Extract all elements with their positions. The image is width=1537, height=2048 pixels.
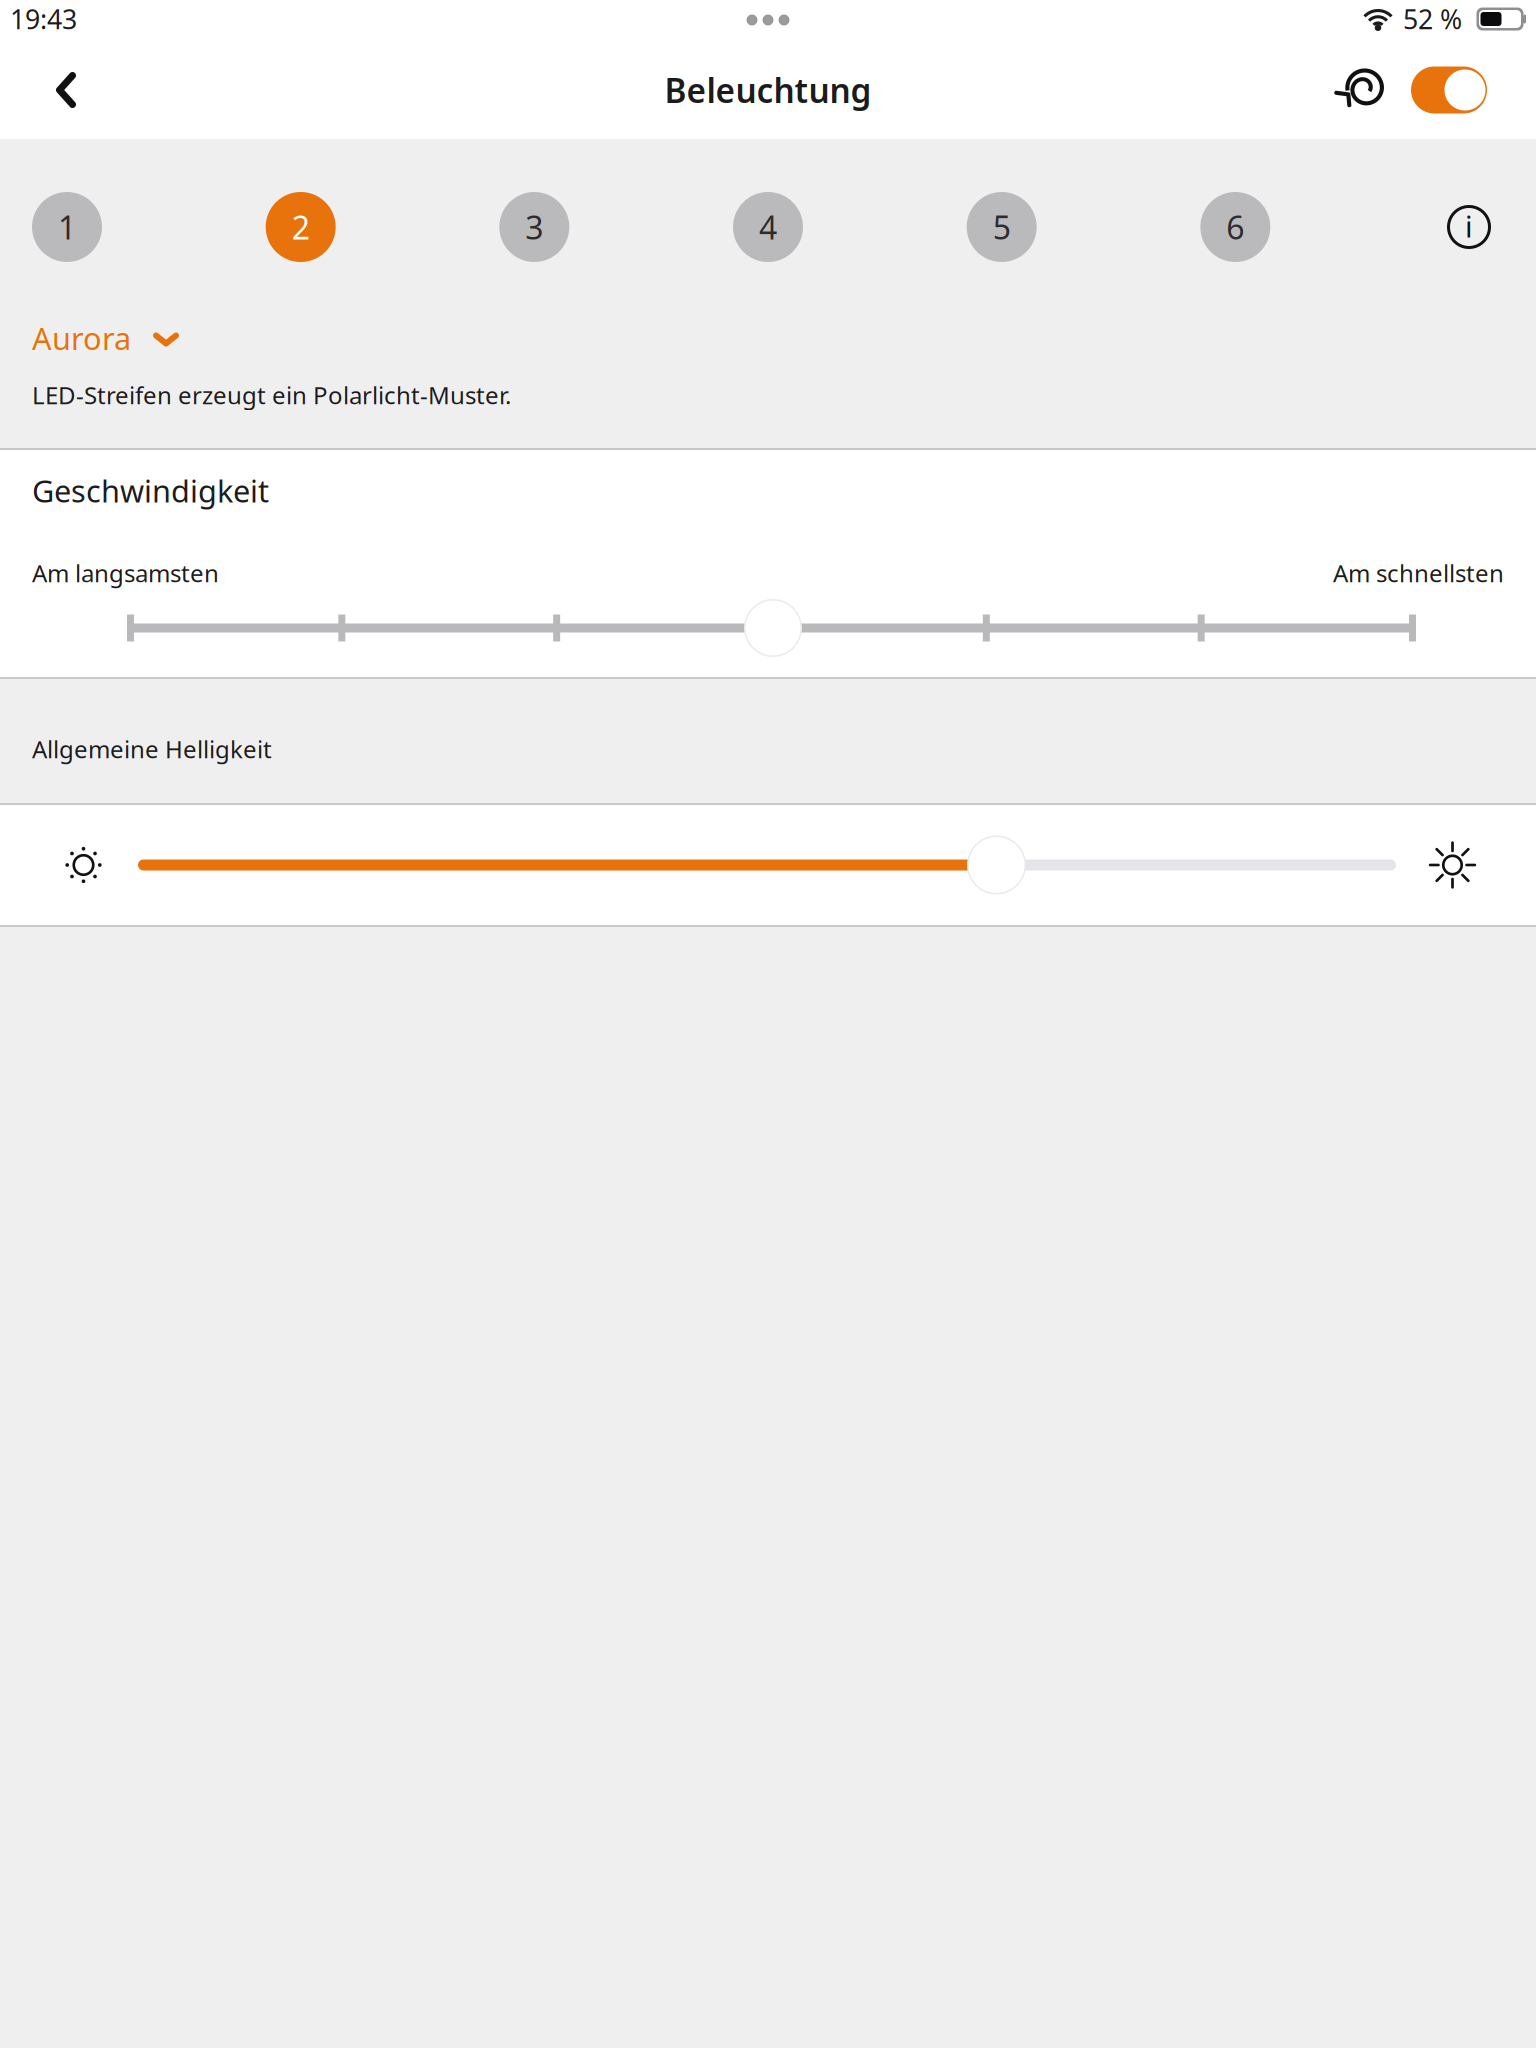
staticText: Am langsamsten [32, 557, 219, 589]
button[interactable]: Aurora [0, 315, 1536, 361]
staticText: Allgemeine Helligkeit [32, 733, 272, 765]
staticText: 6 [1226, 206, 1244, 248]
button[interactable]: 4 [733, 192, 803, 262]
staticText: i [1465, 206, 1473, 245]
staticText: 52 % [1403, 1, 1462, 37]
staticText: Am schnellsten [1333, 557, 1504, 589]
staticText: Beleuchtung [664, 68, 871, 112]
staticText: 4 [759, 206, 777, 248]
staticText: 19:43 [10, 1, 77, 37]
staticText: 3 [525, 206, 543, 248]
button[interactable]: 1 [32, 192, 102, 262]
button[interactable]: Power [1393, 60, 1536, 120]
staticText: 2 [292, 206, 310, 248]
staticText: LED-Streifen erzeugt ein Polarlicht-Must… [32, 379, 511, 411]
staticText: Geschwindigkeit [32, 470, 269, 511]
button[interactable]: Back [0, 60, 108, 120]
button[interactable]: 6 [1200, 192, 1270, 262]
button[interactable]: 5 [967, 192, 1037, 262]
staticText: 1 [58, 206, 76, 248]
staticText: 5 [993, 206, 1011, 248]
button[interactable]: 3 [499, 192, 569, 262]
button[interactable]: Reset [1322, 60, 1393, 120]
button[interactable]: Info [1434, 192, 1504, 262]
staticText: Aurora [32, 318, 131, 358]
button[interactable]: 2 [266, 192, 336, 262]
